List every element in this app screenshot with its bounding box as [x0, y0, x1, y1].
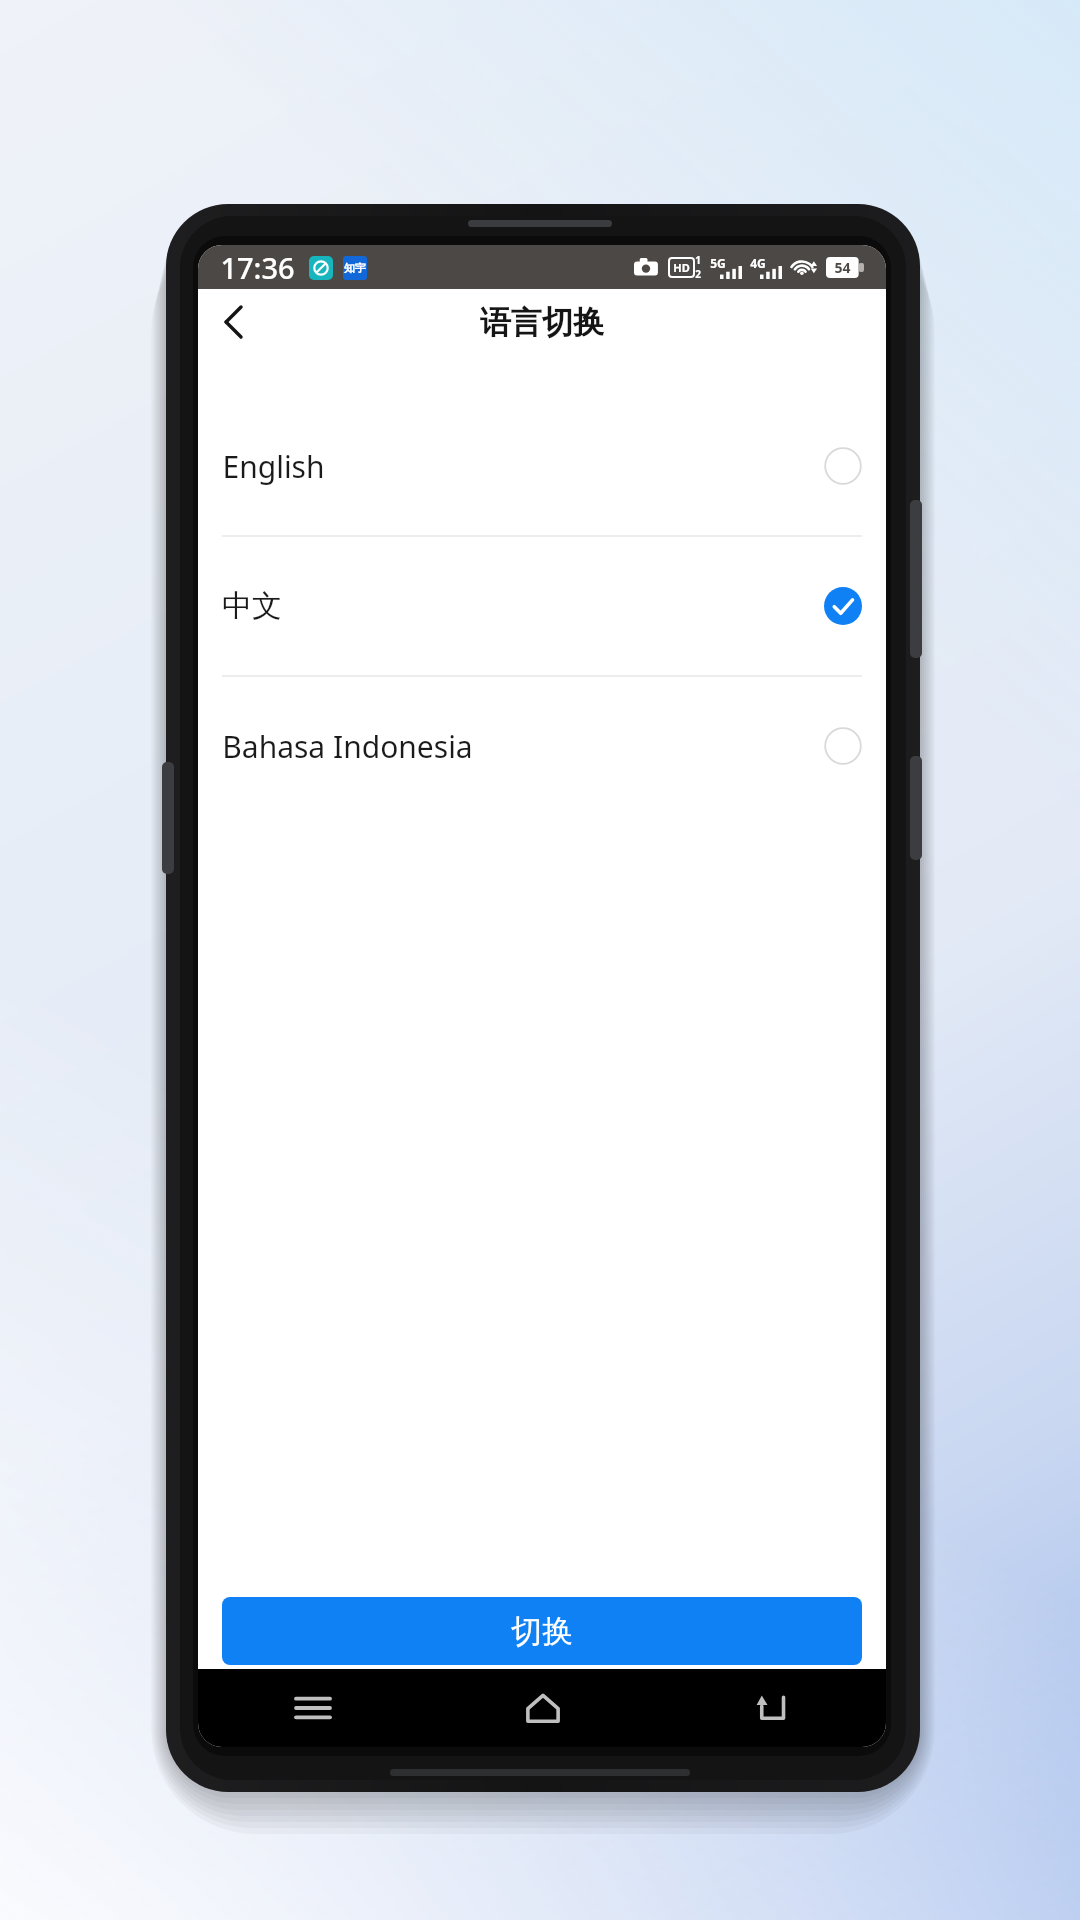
staticText: 知宇	[344, 261, 366, 275]
button[interactable]: 切换	[222, 1597, 862, 1665]
button[interactable]: English	[198, 397, 886, 537]
staticText: 切换	[511, 1612, 573, 1651]
staticText: HD	[673, 260, 690, 275]
button[interactable]: 中文	[198, 537, 886, 677]
staticText: 17:36	[220, 248, 295, 287]
button[interactable]: Home	[428, 1669, 657, 1747]
staticText: 1	[695, 253, 701, 267]
staticText: 中文	[222, 587, 282, 625]
button[interactable]: Back	[198, 289, 270, 355]
button[interactable]: Back	[657, 1669, 886, 1747]
staticText: 语言切换	[480, 303, 604, 342]
staticText: 2	[695, 267, 701, 281]
staticText: Bahasa Indonesia	[222, 726, 473, 767]
staticText: 5G	[710, 255, 726, 271]
staticText: English	[222, 446, 325, 487]
button[interactable]: Bahasa Indonesia	[198, 677, 886, 815]
button[interactable]: Recents	[198, 1669, 428, 1747]
staticText: 54	[834, 258, 851, 277]
staticText: 4G	[750, 255, 766, 271]
